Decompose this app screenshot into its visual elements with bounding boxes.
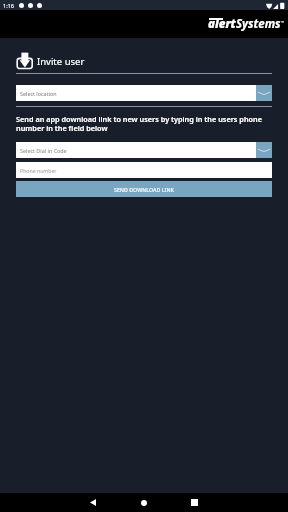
staticText: 1:16 (3, 2, 14, 9)
staticText: Phone number (20, 167, 57, 174)
button[interactable]: Phone number (16, 162, 272, 178)
button[interactable]: SEND DOWNLOAD LINK (16, 181, 272, 197)
button[interactable]: Back (67, 493, 118, 512)
staticText: Invite user (37, 55, 85, 68)
staticText: Send an app download link to new users b… (16, 114, 274, 133)
staticText: SEND DOWNLOAD LINK (114, 186, 174, 193)
staticText: Select location (20, 90, 57, 97)
button[interactable]: Recent apps (169, 493, 220, 512)
staticText: ™ (281, 20, 285, 25)
staticText: Select Dial in Code (20, 147, 67, 154)
button[interactable]: Select location (16, 85, 272, 101)
button[interactable]: Invite user (0, 52, 288, 70)
button[interactable]: Home (118, 493, 169, 512)
other: Invite user (16, 52, 34, 70)
staticText: alert (208, 16, 236, 32)
staticText: Systems (236, 16, 281, 32)
button[interactable]: Select Dial in Code (16, 142, 272, 158)
